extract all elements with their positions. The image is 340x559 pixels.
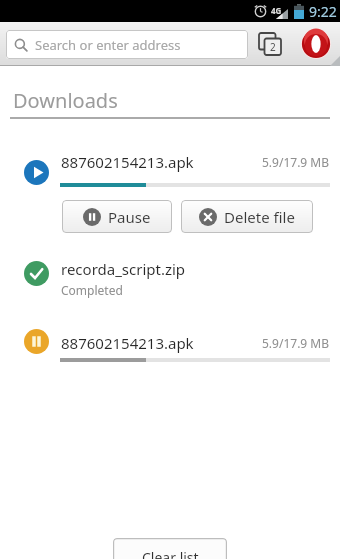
button[interactable]: Pause: [62, 200, 172, 233]
staticText: Completed: [61, 282, 123, 298]
staticText: recorda_script.zip: [61, 259, 186, 279]
button[interactable]: Delete file: [181, 200, 313, 233]
staticText: 2: [270, 40, 276, 54]
button[interactable]: recorda_script.zip: [0, 233, 340, 298]
button[interactable]: Search or enter address: [6, 30, 248, 59]
staticText: Delete file: [224, 207, 295, 227]
button[interactable]: 2: [248, 22, 292, 66]
staticText: 887602154213.apk: [61, 152, 194, 172]
button[interactable]: 887602154213.apk: [0, 119, 340, 187]
staticText: Downloads: [13, 87, 118, 114]
button[interactable]: Clear list: [113, 538, 227, 559]
staticText: 5.9/17.9 MB: [262, 335, 330, 351]
staticText: 887602154213.apk: [61, 333, 194, 353]
staticText: 4G: [271, 5, 282, 16]
staticText: 5.9/17.9 MB: [262, 154, 330, 170]
button[interactable]: 887602154213.apk: [0, 298, 340, 362]
staticText: 9:22: [309, 2, 337, 21]
staticText: Pause: [108, 207, 151, 227]
staticText: Clear list: [142, 548, 199, 559]
button[interactable]: [292, 22, 340, 66]
staticText: Search or enter address: [35, 36, 181, 54]
